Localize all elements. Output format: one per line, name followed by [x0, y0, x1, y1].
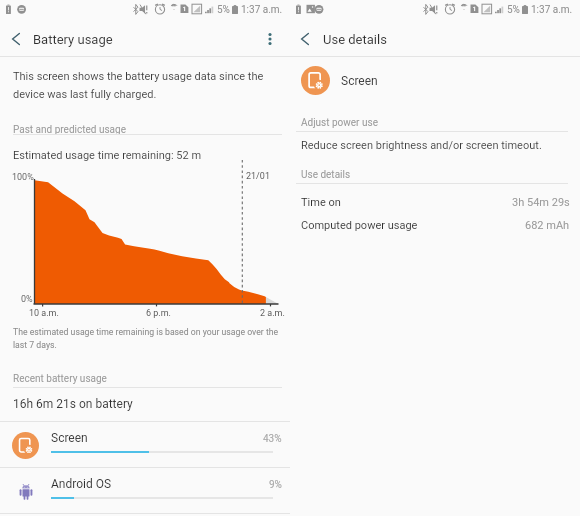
button[interactable]: Navigate up: [291, 25, 319, 53]
staticText: Estimated usage time remaining: 52 m: [13, 149, 202, 162]
staticText: 5%: [507, 4, 520, 16]
staticText: Use details: [301, 169, 351, 181]
staticText: Use details: [323, 32, 387, 47]
staticText: 1:37 a.m.: [241, 4, 283, 16]
staticText: 0%: [21, 294, 33, 305]
staticText: 2 a.m.: [260, 308, 285, 319]
staticText: 682 mAh: [525, 219, 570, 232]
staticText: 1:37 a.m.: [531, 4, 573, 16]
staticText: 43%: [263, 433, 282, 445]
staticText: Time on: [301, 196, 341, 209]
staticText: 16h 6m 21s on battery: [13, 397, 133, 411]
staticText: Reduce screen brightness and/or screen t…: [301, 139, 542, 152]
staticText: 3h 54m 29s: [512, 196, 570, 209]
staticText: 100%: [12, 172, 34, 183]
staticText: 10 a.m.: [29, 308, 59, 319]
staticText: Recent battery usage: [13, 373, 107, 385]
button[interactable]: Navigate up: [2, 25, 30, 53]
staticText: Screen: [51, 431, 88, 445]
staticText: 6 p.m.: [146, 308, 171, 319]
staticText: 9%: [269, 479, 282, 491]
staticText: Screen: [341, 74, 378, 88]
button[interactable]: Android OS: [0, 468, 290, 514]
button[interactable]: Screen: [0, 422, 290, 468]
staticText: 5%: [217, 4, 230, 16]
staticText: Android OS: [51, 477, 112, 491]
button[interactable]: Computed power usage: [290, 214, 580, 236]
staticText: Past and predicted usage: [13, 124, 126, 136]
button[interactable]: Time on: [290, 191, 580, 213]
staticText: This screen shows the battery usage data…: [13, 70, 264, 101]
staticText: Battery usage: [33, 32, 113, 47]
staticText: 21/01: [246, 171, 270, 182]
button[interactable]: More options: [255, 24, 285, 54]
staticText: The estimated usage time remaining is ba…: [13, 327, 279, 350]
staticText: Adjust power use: [301, 117, 378, 129]
staticText: Computed power usage: [301, 219, 418, 232]
